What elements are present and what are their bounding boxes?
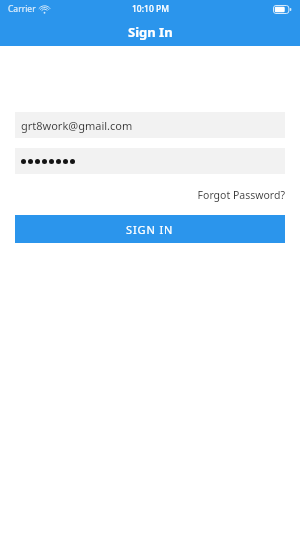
staticText: grt8work@gmail.com (21, 118, 133, 133)
staticText: 10:10 PM (132, 3, 169, 15)
staticText: Carrier (8, 3, 36, 15)
staticText: Forgot Password? (197, 188, 285, 202)
button[interactable]: grt8work@gmail.com (15, 112, 285, 138)
button[interactable]: SIGN IN (15, 215, 285, 243)
button[interactable] (15, 148, 285, 174)
other: Battery level (273, 5, 292, 14)
staticText: SIGN IN (126, 222, 174, 237)
staticText: Sign In (128, 23, 173, 41)
button[interactable]: Forgot Password? (197, 188, 285, 202)
other: Wi-Fi signal (39, 5, 50, 14)
